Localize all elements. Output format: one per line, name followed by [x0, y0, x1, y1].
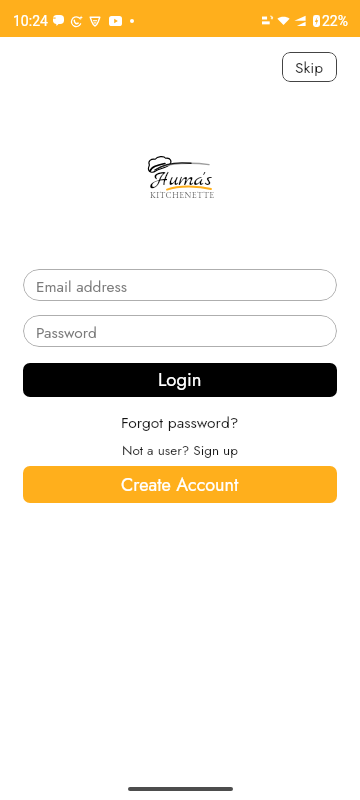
button[interactable]: Create Account	[23, 466, 337, 503]
staticText: Password	[36, 321, 97, 343]
button[interactable]: Email address	[23, 269, 337, 301]
button[interactable]: Password	[23, 315, 337, 347]
staticText: Huma's	[152, 167, 212, 193]
staticText: Not a user? Sign up	[122, 441, 238, 461]
staticText: 22%	[322, 13, 348, 29]
button[interactable]: Login	[23, 363, 337, 397]
button[interactable]: Skip	[282, 52, 337, 82]
staticText: 10:24	[13, 13, 48, 29]
staticText: Login	[158, 366, 202, 393]
staticText: Create Account	[121, 472, 239, 498]
button[interactable]: Not a user? Sign up	[122, 441, 238, 461]
staticText: KITCHENETTE	[150, 189, 215, 200]
button[interactable]: Forgot password?	[121, 411, 239, 434]
staticText: Skip	[295, 56, 324, 78]
staticText: Forgot password?	[121, 411, 239, 434]
staticText: Email address	[36, 275, 128, 297]
